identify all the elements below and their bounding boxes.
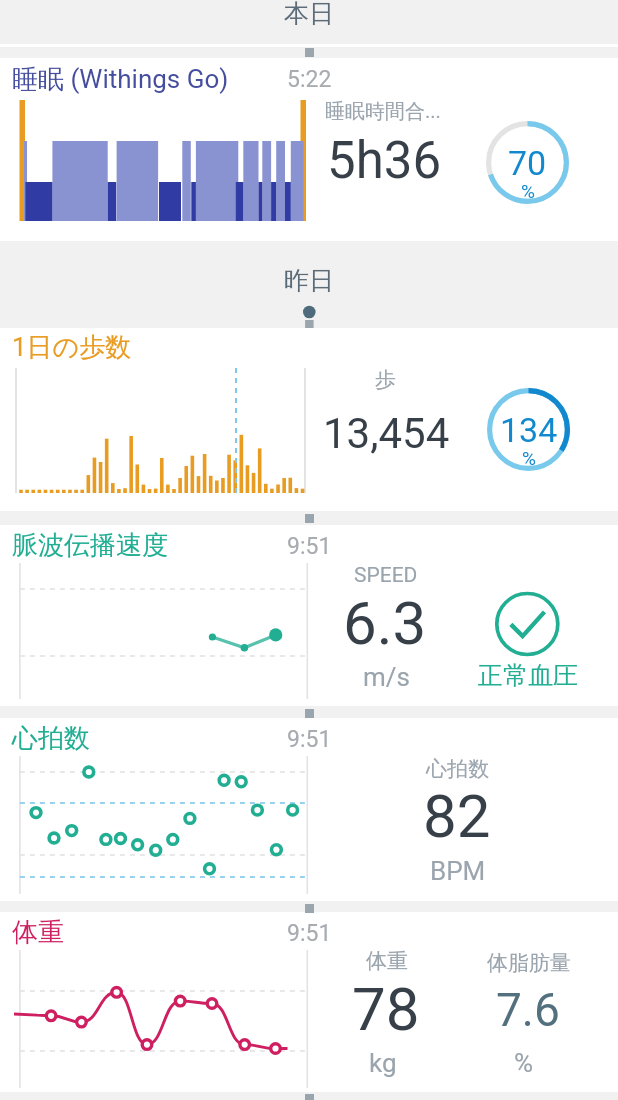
- staticText: 5:22: [287, 66, 332, 93]
- staticText: %: [522, 447, 536, 469]
- button[interactable]: 1日の歩数: [0, 328, 618, 511]
- staticText: 睡眠 (Withings Go): [12, 63, 229, 96]
- staticText: 歩: [375, 367, 396, 393]
- staticText: m/s: [363, 662, 410, 692]
- staticText: kg: [369, 1048, 397, 1078]
- staticText: %: [514, 1048, 534, 1078]
- staticText: 78: [352, 974, 420, 1044]
- staticText: 9:51: [287, 533, 332, 560]
- staticText: 体脂肪量: [487, 950, 571, 976]
- staticText: 1日の歩数: [12, 331, 132, 364]
- staticText: 心拍数: [12, 722, 90, 755]
- staticText: 心拍数: [426, 756, 489, 782]
- staticText: 9:51: [287, 920, 332, 947]
- staticText: 82: [423, 781, 491, 851]
- button[interactable]: 心拍数: [0, 718, 618, 901]
- staticText: 脈波伝播速度: [12, 529, 168, 562]
- staticText: 5h36: [327, 131, 442, 191]
- staticText: BPM: [430, 856, 486, 886]
- staticText: 本日: [284, 0, 334, 29]
- staticText: 正常血圧: [478, 660, 578, 691]
- staticText: 134: [500, 410, 558, 450]
- staticText: %: [521, 180, 535, 202]
- staticText: 7.6: [496, 983, 560, 1037]
- staticText: 9:51: [287, 726, 332, 753]
- button[interactable]: 睡眠 (Withings Go): [0, 58, 618, 241]
- button[interactable]: 体重: [0, 912, 618, 1092]
- staticText: SPEED: [354, 563, 418, 588]
- staticText: 6.3: [343, 588, 427, 658]
- staticText: 体重: [366, 948, 408, 974]
- button[interactable]: 脈波伝播速度: [0, 525, 618, 706]
- staticText: 体重: [12, 916, 64, 949]
- staticText: 昨日: [284, 265, 334, 296]
- staticText: 睡眠時間合...: [325, 99, 441, 124]
- staticText: 13,454: [323, 409, 450, 458]
- staticText: 70: [508, 143, 547, 183]
